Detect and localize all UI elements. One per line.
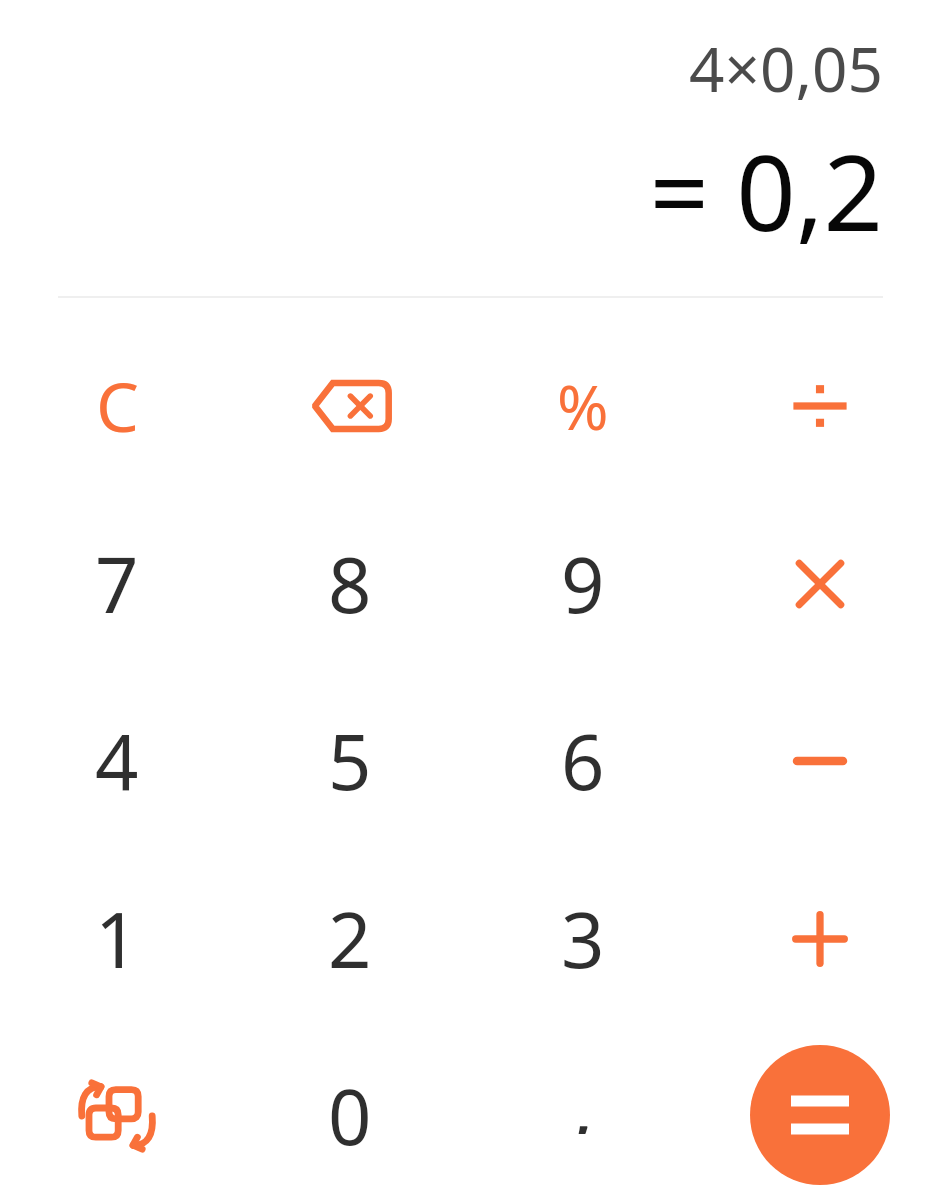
- button[interactable]: 6: [483, 678, 683, 843]
- button[interactable]: 9: [483, 501, 683, 666]
- button[interactable]: 2: [250, 856, 450, 1021]
- button[interactable]: 4: [17, 678, 217, 843]
- staticText: = 0,2: [649, 120, 883, 262]
- staticText: 0: [328, 1064, 372, 1168]
- button[interactable]: Equals: [750, 1045, 890, 1185]
- button[interactable]: Decimal comma: [483, 1033, 683, 1198]
- staticText: %: [557, 364, 609, 448]
- button[interactable]: Unit converter: [17, 1033, 217, 1198]
- staticText: 5: [328, 709, 372, 813]
- button[interactable]: Plus: [720, 856, 920, 1021]
- staticText: C: [96, 359, 139, 452]
- staticText: 9: [561, 532, 605, 636]
- button[interactable]: 3: [483, 856, 683, 1021]
- button[interactable]: 0: [250, 1033, 450, 1198]
- staticText: 6: [561, 709, 605, 813]
- button[interactable]: 8: [250, 501, 450, 666]
- staticText: 3: [561, 887, 605, 991]
- button[interactable]: 7: [17, 501, 217, 666]
- button[interactable]: Percent: [483, 323, 683, 488]
- staticText: 1: [95, 887, 139, 991]
- button[interactable]: Backspace: [250, 323, 450, 488]
- staticText: 4: [95, 709, 139, 813]
- button[interactable]: Multiply: [720, 501, 920, 666]
- staticText: 8: [328, 532, 372, 636]
- button[interactable]: Divide: [720, 323, 920, 488]
- button[interactable]: 1: [17, 856, 217, 1021]
- button[interactable]: Minus: [720, 678, 920, 843]
- button[interactable]: Clear: [17, 323, 217, 488]
- staticText: ,: [573, 1054, 594, 1134]
- staticText: 2: [328, 887, 372, 991]
- button[interactable]: 5: [250, 678, 450, 843]
- staticText: 7: [95, 532, 139, 636]
- staticText: 4×0,05: [689, 26, 883, 110]
